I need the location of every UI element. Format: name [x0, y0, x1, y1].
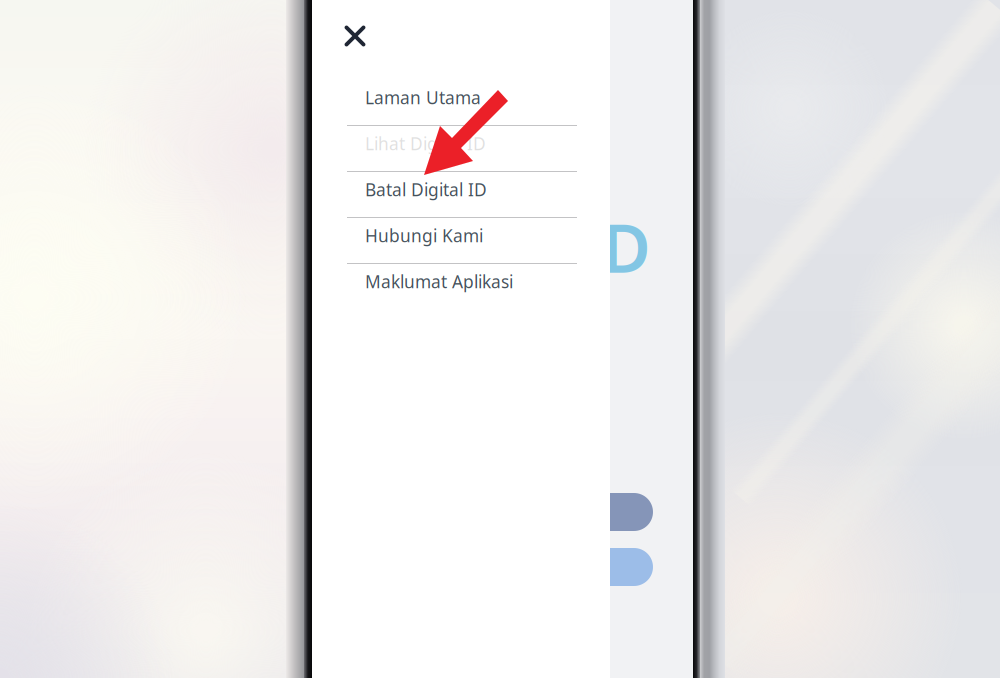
- button[interactable]: Batal Digital ID: [312, 172, 610, 217]
- button[interactable]: Hubungi Kami: [312, 218, 610, 263]
- button[interactable]: Close menu: [333, 14, 377, 58]
- staticText: Hubungi Kami: [365, 224, 483, 247]
- staticText: Maklumat Aplikasi: [365, 270, 513, 293]
- button[interactable]: Laman Utama: [312, 80, 610, 125]
- staticText: Batal Digital ID: [365, 178, 487, 201]
- button[interactable]: Lihat Digital ID: [312, 126, 610, 171]
- staticText: Lihat Digital ID: [365, 132, 486, 155]
- staticText: Laman Utama: [365, 86, 481, 109]
- button[interactable]: Maklumat Aplikasi: [312, 264, 610, 309]
- staticText: D: [602, 203, 651, 291]
